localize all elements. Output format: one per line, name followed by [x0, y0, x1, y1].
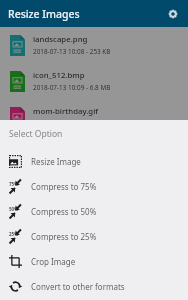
button[interactable]: 50%: [0, 199, 188, 224]
staticText: 2018-07-13 10:09 - 6.8 MB: [33, 83, 111, 92]
button[interactable]: Convert to other formats: [0, 274, 188, 299]
button[interactable]: Settings: [159, 0, 186, 27]
button[interactable]: Crop Image: [0, 249, 188, 274]
staticText: 50%: [9, 206, 19, 212]
staticText: Crop Image: [31, 256, 76, 267]
staticText: Select Option: [9, 128, 63, 140]
staticText: 75%: [9, 181, 19, 187]
staticText: Resize Image: [31, 156, 81, 167]
button[interactable]: landscape.png: [0, 27, 188, 63]
button[interactable]: 75%: [0, 174, 188, 199]
button[interactable]: icon_512.bmp: [0, 63, 188, 99]
staticText: Compress to 75%: [31, 181, 97, 192]
staticText: Compress to 50%: [31, 206, 97, 217]
staticText: 25%: [9, 231, 19, 237]
staticText: mom-birthday.gif: [33, 106, 99, 117]
staticText: 2018-07-13 10:10 - 1.2 MB: [33, 119, 111, 128]
staticText: Resize Images: [8, 7, 80, 21]
staticText: landscape.png: [33, 34, 88, 45]
staticText: icon_512.bmp: [33, 70, 85, 81]
button[interactable]: Resize Image: [0, 149, 188, 174]
staticText: Convert to other formats: [31, 281, 125, 292]
button[interactable]: 25%: [0, 224, 188, 249]
staticText: Compress to 25%: [31, 231, 97, 242]
staticText: 2018-07-13 10:08 - 253 KB: [33, 47, 111, 56]
button[interactable]: mom-birthday.gif: [0, 99, 188, 135]
